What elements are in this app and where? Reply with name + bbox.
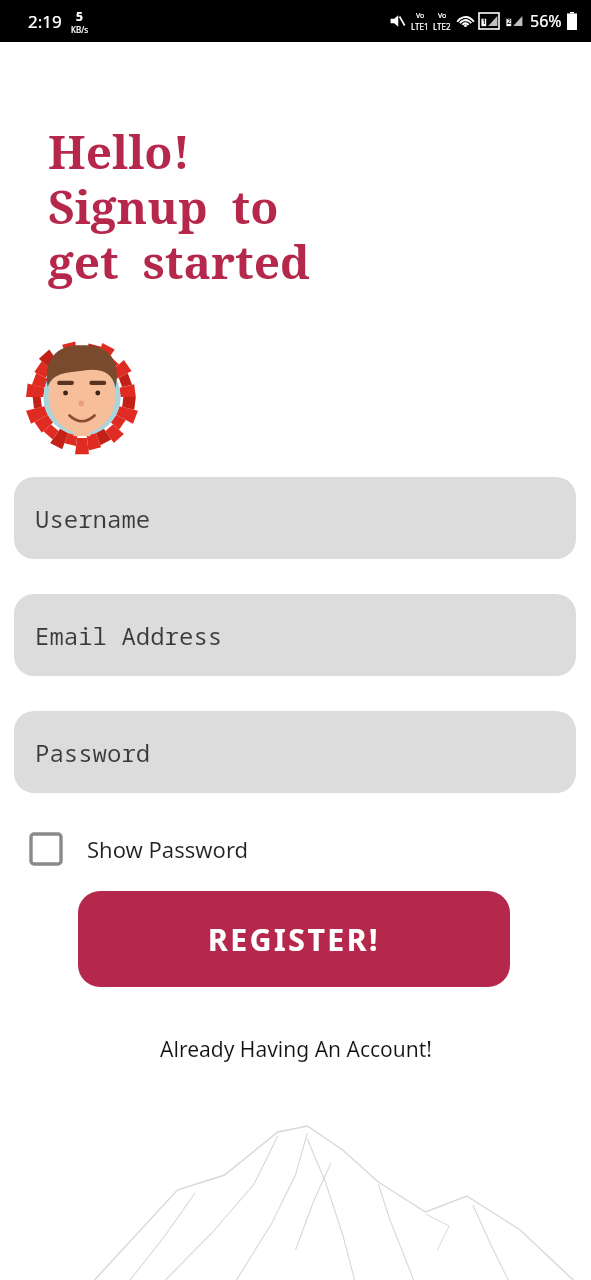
button[interactable]: REGISTER! xyxy=(78,891,510,987)
staticText: 1 xyxy=(482,17,487,27)
staticText: Email Address xyxy=(35,619,223,652)
staticText: Password xyxy=(35,736,151,769)
staticText: Vo xyxy=(438,11,447,21)
button[interactable]: Show Password xyxy=(31,834,249,864)
button[interactable]: Username xyxy=(14,477,576,559)
button[interactable]: Password xyxy=(14,711,576,793)
staticText: 2 xyxy=(507,17,512,27)
staticText: KB/s xyxy=(71,24,88,35)
staticText: Hello! Signup to get started xyxy=(48,120,310,293)
staticText: LTE1 xyxy=(411,21,429,32)
button[interactable]: Already Having An Account! xyxy=(160,1035,432,1064)
staticText: Vo xyxy=(416,11,425,21)
staticText: Username xyxy=(35,502,151,535)
button[interactable]: Email Address xyxy=(14,594,576,676)
staticText: 2:19 xyxy=(28,10,62,33)
staticText: Show Password xyxy=(87,834,249,864)
other: Profile avatar xyxy=(26,341,138,453)
staticText: REGISTER! xyxy=(208,919,381,960)
staticText: 5 xyxy=(76,8,83,24)
staticText: 56% xyxy=(530,10,562,32)
staticText: LTE2 xyxy=(433,21,451,32)
